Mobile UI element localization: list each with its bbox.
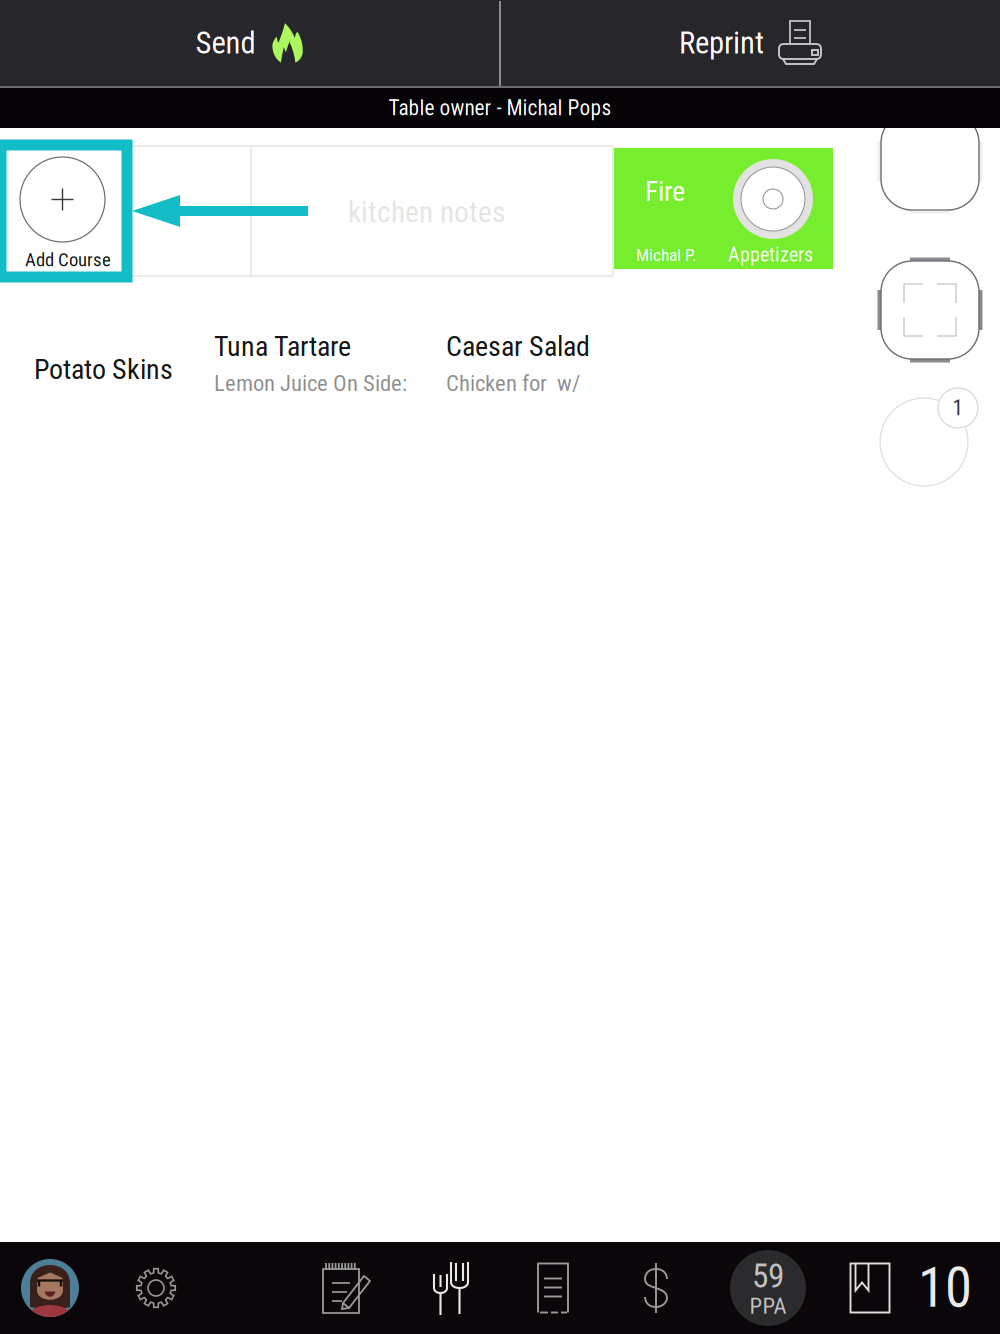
button[interactable]: Send [0, 0, 499, 86]
button[interactable]: Order notes [301, 1242, 393, 1334]
staticText: kitchen notes [348, 195, 505, 229]
button[interactable]: 10 [899, 1254, 991, 1322]
button[interactable]: Settings [110, 1242, 202, 1334]
staticText: Chicken for w/ [446, 370, 580, 397]
staticText: Add Course [25, 249, 111, 271]
button[interactable]: Per person average [718, 1243, 818, 1333]
button[interactable]: Check [507, 1242, 599, 1334]
staticText: 59 [752, 1257, 784, 1296]
staticText: Appetizers [728, 243, 813, 266]
staticText: Reprint [679, 25, 764, 61]
staticText: 1 [952, 395, 963, 420]
staticText: 10 [918, 1256, 972, 1320]
staticText: Lemon Juice On Side: [214, 370, 407, 397]
button[interactable]: Courses [405, 1242, 497, 1334]
button[interactable]: Profile [4, 1242, 96, 1334]
staticText: Potato Skins [34, 353, 173, 386]
button[interactable]: Add Course [1, 145, 127, 277]
button[interactable]: Payments [610, 1242, 702, 1334]
button[interactable]: Reprint [501, 0, 1000, 86]
staticText: Table owner - Michal Pops [388, 95, 611, 120]
staticText: Michal P. [636, 245, 697, 265]
button[interactable]: Tabs [824, 1242, 916, 1334]
staticText: Fire [645, 175, 685, 208]
staticText: Send [195, 25, 255, 61]
staticText: Tuna Tartare [214, 330, 351, 363]
staticText: PPA [749, 1293, 786, 1319]
staticText: Caesar Salad [446, 330, 590, 363]
button[interactable]: Fire [614, 148, 833, 269]
